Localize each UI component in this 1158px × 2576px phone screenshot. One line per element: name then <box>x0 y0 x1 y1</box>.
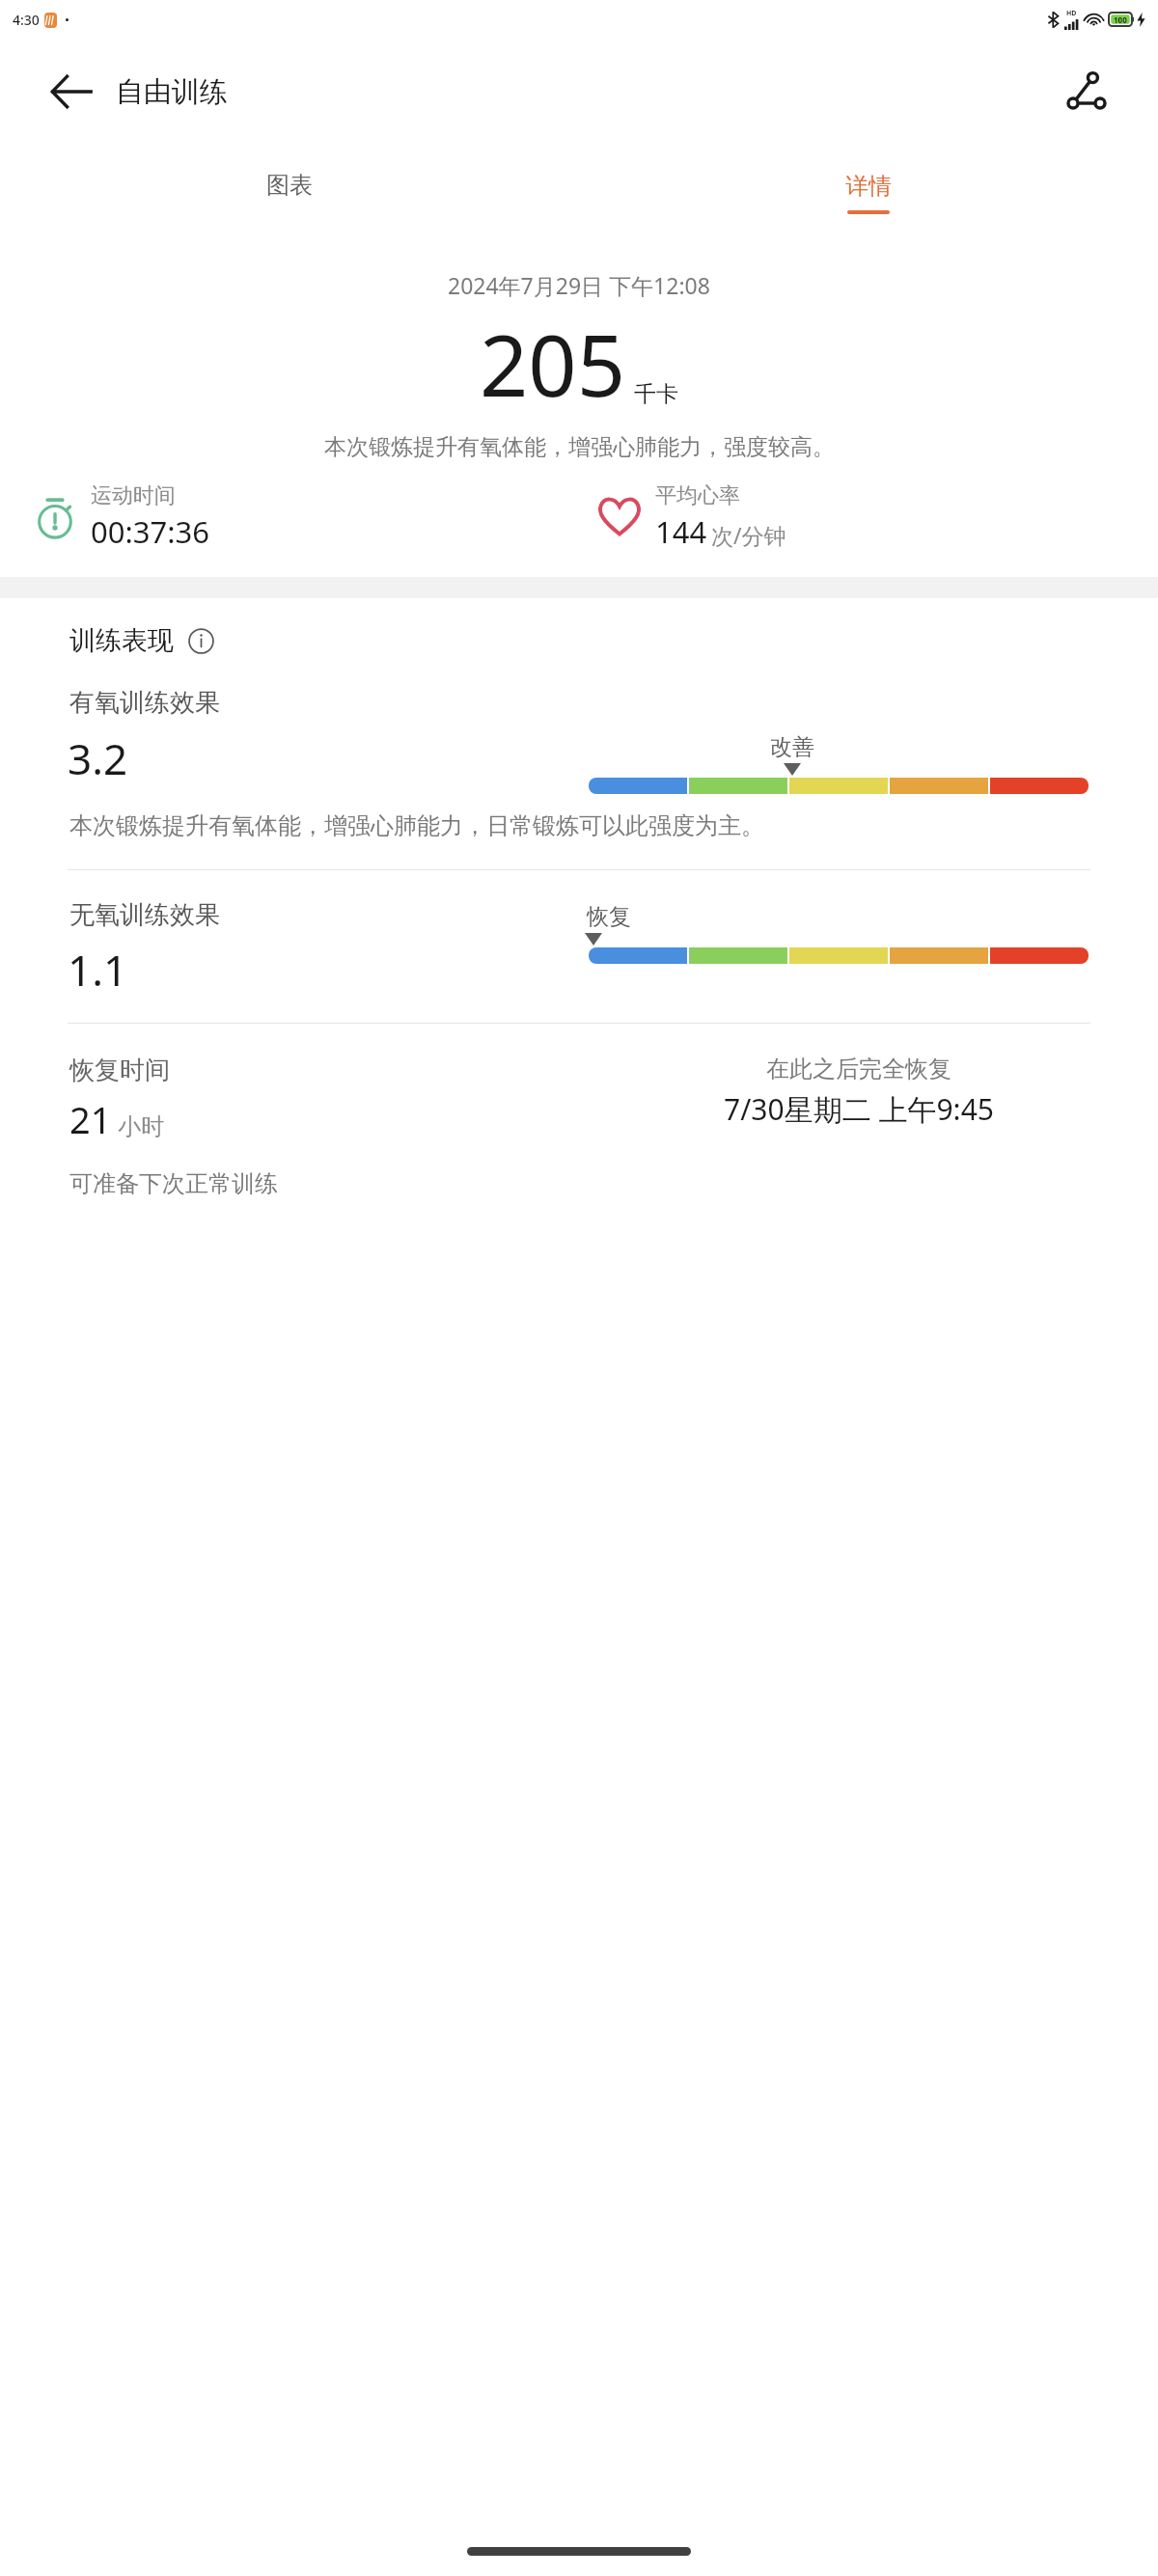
staticText: 144 <box>655 511 707 552</box>
button[interactable]: Back <box>46 67 96 117</box>
staticText: 无氧训练效果 <box>69 899 220 931</box>
staticText: 100 <box>1114 14 1127 25</box>
staticText: 运动时间 <box>91 482 176 509</box>
staticText: 205 <box>480 306 626 422</box>
staticText: 2024年7月29日 下午12:08 <box>448 270 710 300</box>
staticText: 图表 <box>266 171 313 200</box>
button[interactable]: Share <box>1058 63 1116 121</box>
staticText: 00:37:36 <box>91 511 210 552</box>
staticText: 可准备下次正常训练 <box>69 1169 278 1198</box>
button[interactable]: 详情 <box>579 145 1158 241</box>
staticText: 改善 <box>770 733 814 761</box>
staticText: 21 <box>69 1094 112 1144</box>
staticText: 有氧训练效果 <box>69 687 220 719</box>
button[interactable]: Info <box>183 623 218 658</box>
staticText: 平均心率 <box>655 482 740 509</box>
staticText: 自由训练 <box>116 74 228 110</box>
staticText: 恢复时间 <box>69 1055 170 1086</box>
staticText: HD <box>1066 9 1077 18</box>
button[interactable]: 图表 <box>0 145 579 241</box>
staticText: 4:30 <box>13 11 40 29</box>
staticText: 在此之后完全恢复 <box>766 1055 951 1083</box>
staticText: 详情 <box>845 172 892 201</box>
staticText: 3.2 <box>68 729 128 787</box>
staticText: 次/分钟 <box>711 520 786 550</box>
staticText: 本次锻炼提升有氧体能，增强心肺能力，强度较高。 <box>324 433 835 461</box>
staticText: 训练表现 <box>69 624 174 657</box>
staticText: 千卡 <box>634 380 678 408</box>
staticText: 1.1 <box>68 941 128 999</box>
staticText: 7/30星期二 上午9:45 <box>724 1089 994 1129</box>
staticText: 小时 <box>118 1112 164 1141</box>
staticText: 恢复 <box>587 903 631 931</box>
staticText: 本次锻炼提升有氧体能，增强心肺能力，日常锻炼可以此强度为主。 <box>69 811 764 840</box>
